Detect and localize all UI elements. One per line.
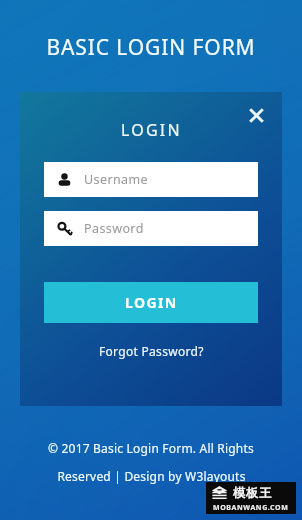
staticText: © 2017 Basic Login Form. All Rights — [48, 440, 254, 456]
button[interactable]: Close — [242, 101, 270, 129]
button[interactable]: Password — [44, 211, 258, 246]
staticText: LOGIN — [121, 119, 182, 141]
staticText: Reserved | Design by W3layouts — [57, 468, 246, 484]
staticText: MOBANWANG.COM — [213, 503, 289, 513]
staticText: LOGIN — [125, 293, 178, 312]
staticText: 模板王 — [233, 485, 273, 500]
button[interactable]: LOGIN — [44, 282, 258, 323]
button[interactable]: Username — [44, 162, 258, 197]
button[interactable]: Forgot Password? — [93, 341, 210, 361]
staticText: BASIC LOGIN FORM — [46, 33, 256, 62]
staticText: Forgot Password? — [99, 343, 204, 359]
staticText: Username — [84, 171, 149, 188]
staticText: Password — [84, 220, 144, 237]
other: mobanwang.com watermark — [206, 482, 296, 514]
